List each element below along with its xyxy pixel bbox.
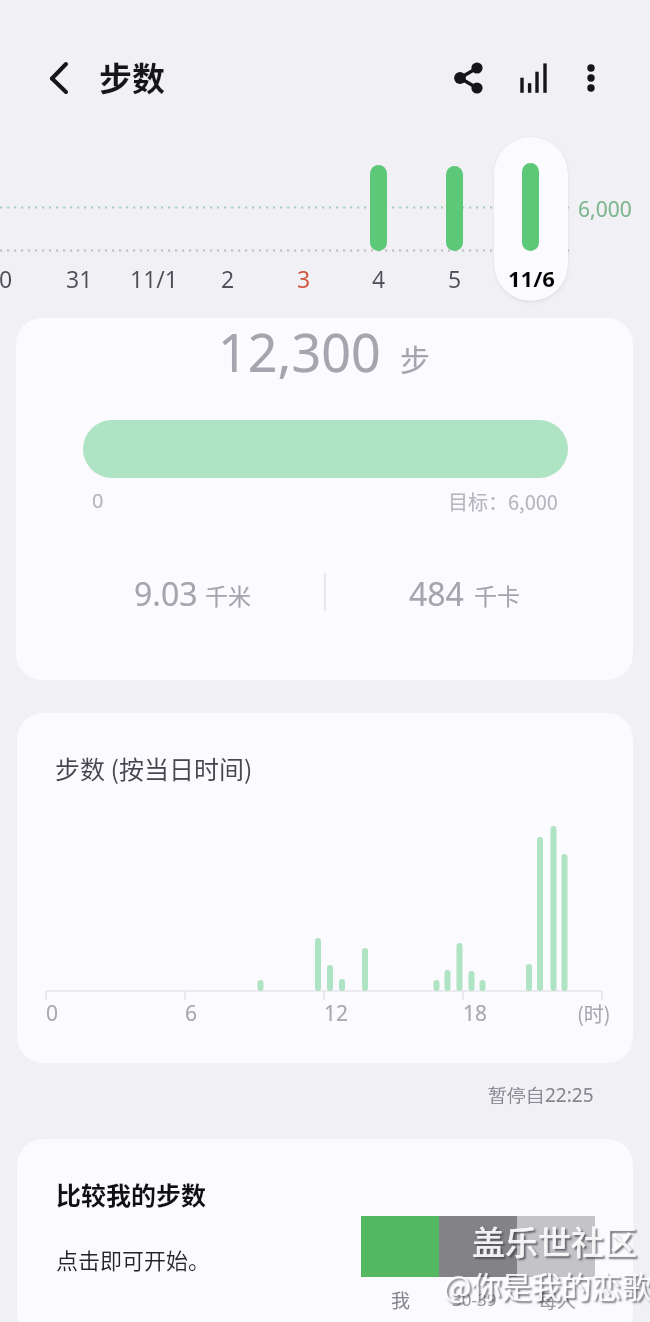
staticText: 0 — [0, 263, 13, 294]
staticText: 盖乐世社区 — [472, 1217, 637, 1265]
button[interactable]: More options — [567, 54, 615, 102]
staticText: 千卡 — [474, 578, 520, 611]
button[interactable]: Share — [436, 54, 484, 102]
staticText: 0 — [46, 999, 59, 1028]
staticText: (时) — [577, 999, 611, 1028]
staticText: 千米 — [205, 578, 251, 611]
staticText: 11/1 — [130, 263, 179, 294]
button[interactable] — [17, 1139, 633, 1322]
staticText: 0 — [92, 487, 104, 514]
button[interactable]: 2 — [198, 261, 258, 295]
staticText: 5 — [448, 263, 462, 294]
button[interactable]: 31 — [49, 261, 109, 295]
button[interactable]: 4 — [349, 261, 409, 295]
staticText: 4 — [372, 263, 386, 294]
button[interactable]: Back — [28, 56, 76, 104]
staticText: 点击即可开始。 — [56, 1243, 211, 1275]
staticText: 步数 — [99, 53, 165, 101]
staticText: 6 — [185, 999, 198, 1028]
staticText: 2 — [221, 263, 235, 294]
staticText: 11/6 — [508, 263, 555, 293]
staticText: 每人 — [538, 1286, 577, 1314]
staticText: 9.03 — [134, 572, 198, 616]
button[interactable]: 3 — [274, 261, 334, 295]
staticText: 31 — [66, 263, 93, 294]
staticText: 484 — [409, 572, 464, 616]
button[interactable] — [17, 713, 633, 1063]
staticText: 18 — [463, 999, 488, 1028]
staticText: 步 — [400, 336, 430, 379]
button[interactable]: 11/1 — [124, 261, 184, 295]
button[interactable]: 5 — [425, 261, 485, 295]
button[interactable] — [16, 318, 633, 680]
staticText: 目标：6,000 — [448, 487, 558, 516]
button[interactable]: Statistics — [500, 54, 548, 102]
staticText: 12 — [324, 999, 349, 1028]
button[interactable]: 11/6 — [501, 261, 561, 295]
staticText: 30-39 — [452, 1288, 497, 1311]
button[interactable] — [494, 137, 568, 301]
staticText: 12,300 — [218, 316, 381, 387]
staticText: 我 — [391, 1286, 411, 1314]
button[interactable]: 0 — [0, 261, 36, 295]
staticText: 暂停自22:25 — [488, 1082, 594, 1108]
staticText: 步数 (按当日时间) — [55, 750, 253, 786]
staticText: 比较我的步数 — [56, 1176, 207, 1212]
staticText: @你是我的恋歌 — [443, 1263, 650, 1306]
staticText: 3 — [297, 263, 311, 294]
staticText: 6,000 — [578, 195, 632, 224]
